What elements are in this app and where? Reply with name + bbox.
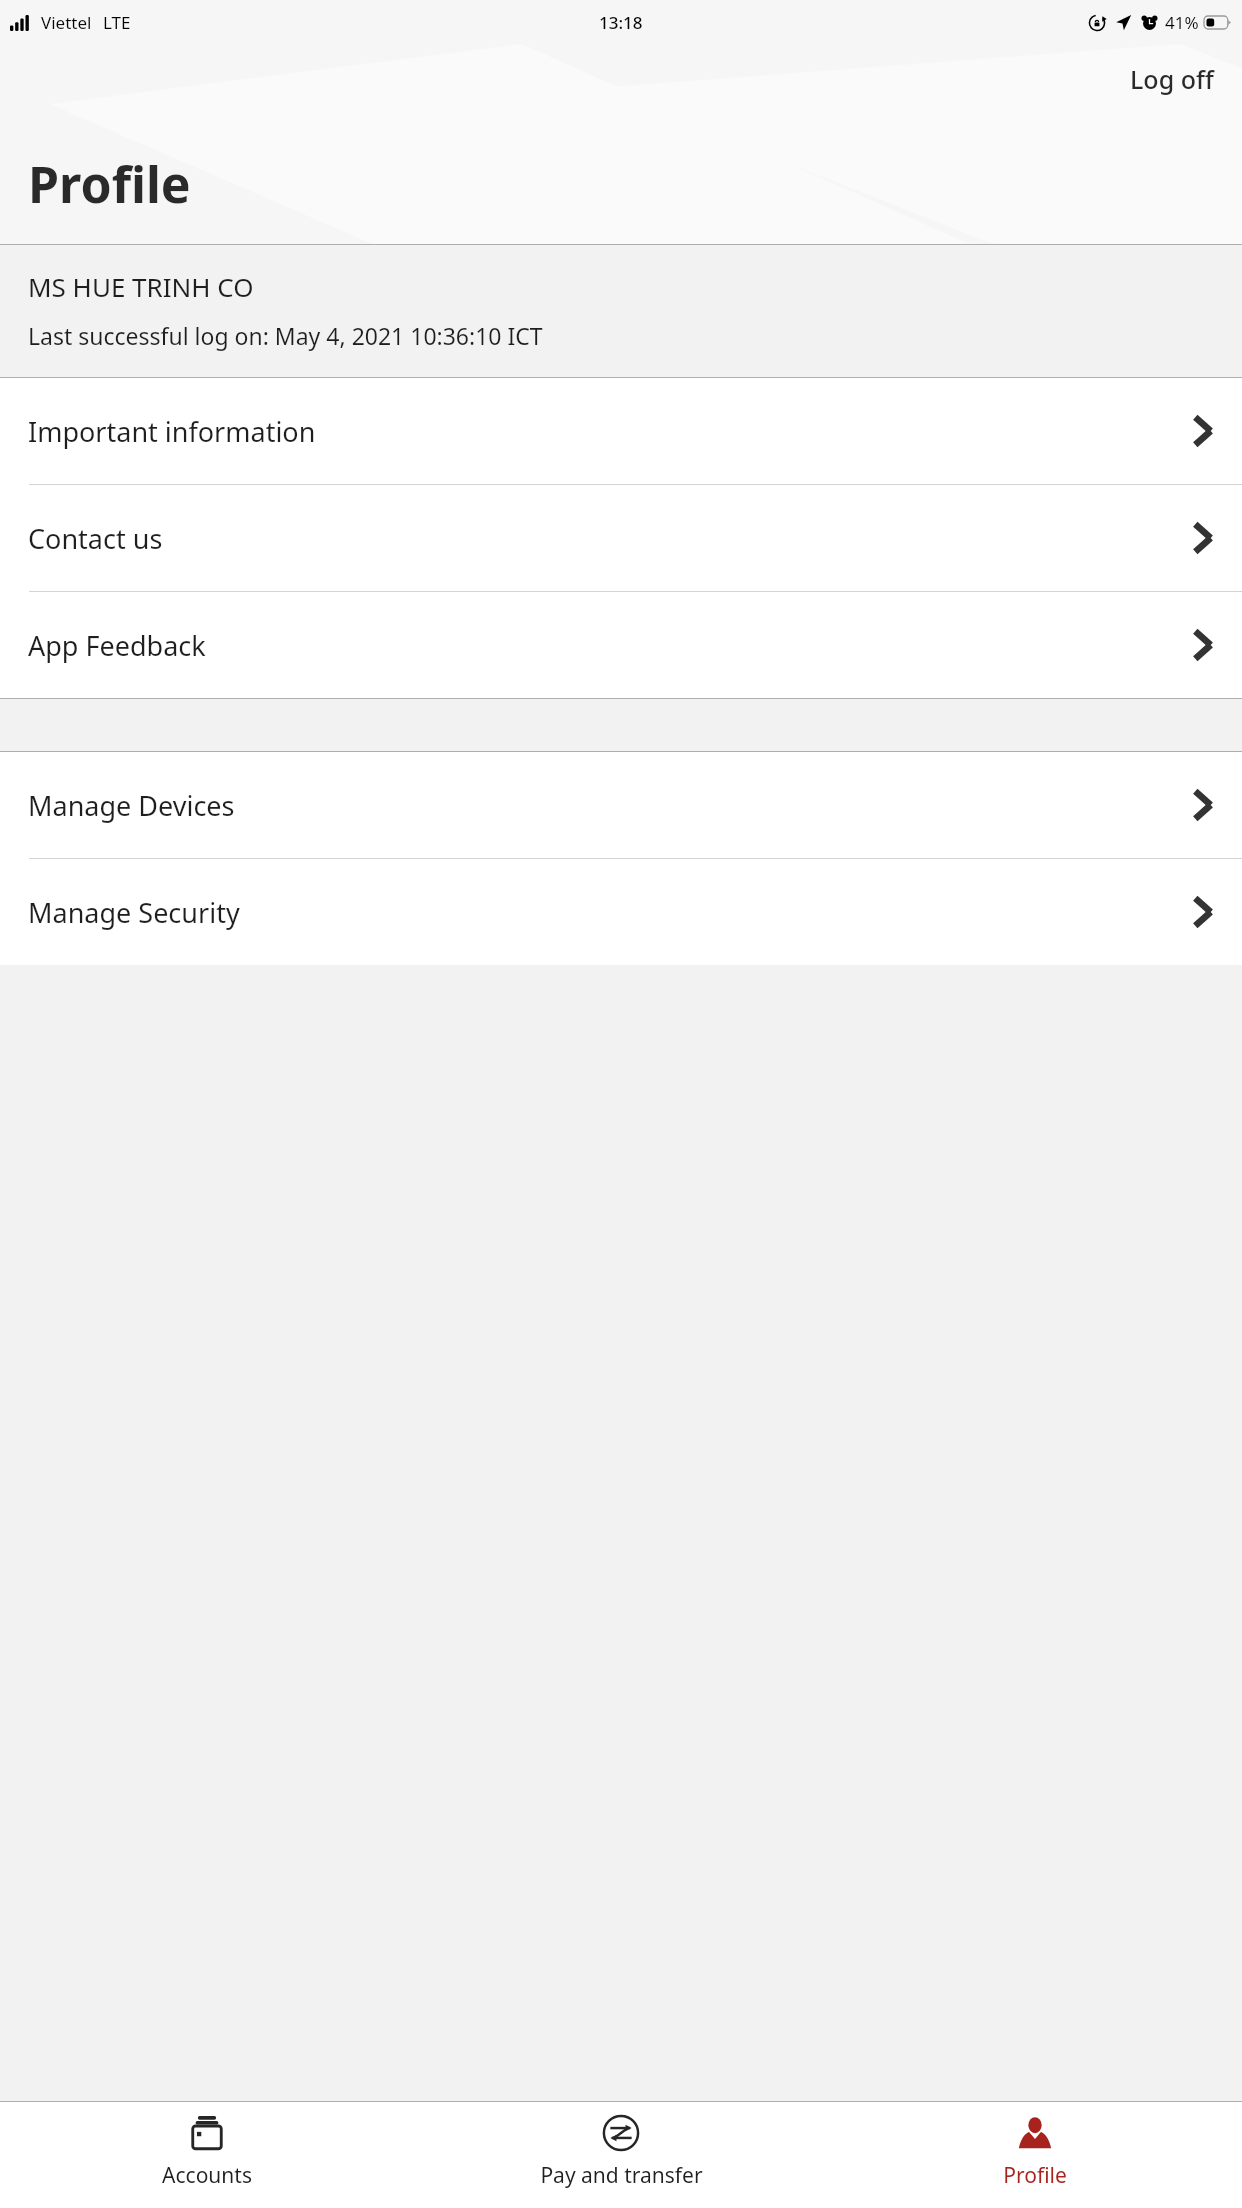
button[interactable]: Manage Security (0, 859, 1242, 965)
staticText: Contact us (28, 520, 1192, 557)
button[interactable]: Accounts (0, 2102, 414, 2208)
staticText: Accounts (162, 2161, 252, 2190)
button[interactable]: Profile (828, 2102, 1242, 2208)
staticText: MS HUE TRINH CO (28, 269, 254, 304)
staticText: Profile (28, 150, 191, 218)
button[interactable]: Pay and transfer (414, 2102, 828, 2208)
button[interactable]: App Feedback (0, 592, 1242, 698)
staticText: Profile (1003, 2161, 1067, 2190)
staticText: Log off (1130, 62, 1214, 96)
button[interactable]: Contact us (0, 485, 1242, 591)
staticText: Manage Security (28, 894, 1192, 931)
staticText: 41% (1165, 11, 1199, 34)
staticText: Pay and transfer (540, 2161, 703, 2190)
staticText: LTE (103, 11, 131, 34)
staticText: Important information (28, 413, 1192, 450)
staticText: Last successful log on: May 4, 2021 10:3… (28, 320, 543, 351)
staticText: Viettel (41, 11, 92, 34)
button[interactable]: Log off (1116, 52, 1228, 106)
button[interactable]: Manage Devices (0, 752, 1242, 858)
staticText: Manage Devices (28, 787, 1192, 824)
staticText: App Feedback (28, 627, 1192, 664)
staticText: 13:18 (599, 11, 643, 34)
button[interactable]: Important information (0, 378, 1242, 484)
